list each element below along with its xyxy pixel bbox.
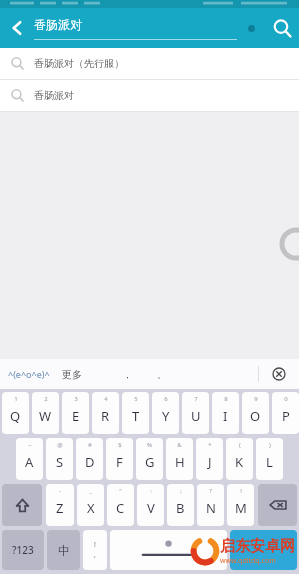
button[interactable]: 0 <box>272 392 299 434</box>
button[interactable]: Back <box>0 8 34 48</box>
staticText: ， <box>123 369 132 380</box>
staticText: C <box>116 499 125 517</box>
staticText: 3 <box>74 395 78 403</box>
button[interactable]: _ <box>77 484 104 526</box>
button[interactable]: Space <box>110 530 227 570</box>
button[interactable]: 1 <box>2 392 29 434</box>
staticText: , <box>94 550 96 560</box>
button[interactable]: 7 <box>182 392 209 434</box>
staticText: P <box>282 407 290 425</box>
button[interactable]: 2 <box>32 392 59 434</box>
button[interactable]: Enter <box>230 530 297 570</box>
staticText: 4 <box>104 395 108 403</box>
button[interactable]: # <box>76 438 103 480</box>
staticText: 香肠派对 <box>34 89 74 102</box>
button[interactable]: 中 <box>47 530 80 570</box>
button[interactable]: ! <box>227 484 254 526</box>
staticText: M <box>235 499 247 517</box>
staticText: E <box>72 407 80 425</box>
staticText: A <box>25 453 34 471</box>
staticText: X <box>87 499 95 517</box>
button[interactable]: ( <box>226 438 253 480</box>
button[interactable]: 5 <box>122 392 149 434</box>
staticText: www.qdltdq.com <box>220 556 276 566</box>
staticText: V <box>147 499 155 517</box>
button[interactable]: Backspace <box>258 484 297 526</box>
button[interactable]: ， <box>110 359 144 389</box>
staticText: " <box>119 487 122 495</box>
staticText: ^(e^o^e)^ <box>8 368 50 380</box>
staticText: D <box>85 453 95 471</box>
button[interactable]: @ <box>46 438 73 480</box>
staticText: 。 <box>157 369 166 380</box>
staticText: Z <box>56 499 64 517</box>
button[interactable]: 9 <box>242 392 269 434</box>
button[interactable]: % <box>136 438 163 480</box>
staticText: @ <box>57 441 63 449</box>
staticText: & <box>177 441 182 449</box>
staticText: 2 <box>44 395 48 403</box>
staticText: 更多 <box>62 368 82 381</box>
button[interactable]: 8 <box>212 392 239 434</box>
staticText: ! <box>240 487 242 495</box>
staticText: R <box>101 407 110 425</box>
staticText: 9 <box>254 395 258 403</box>
staticText: 香肠派对 <box>34 17 82 32</box>
button[interactable]: ~ <box>16 438 43 480</box>
staticText: Y <box>162 407 170 425</box>
button[interactable]: 。 <box>144 359 178 389</box>
staticText: H <box>175 453 185 471</box>
staticText: 8 <box>224 395 228 403</box>
button[interactable]: 更多 <box>60 364 84 385</box>
button[interactable]: ) <box>256 438 283 480</box>
staticText: ? <box>209 487 212 495</box>
staticText: B <box>176 499 185 517</box>
button[interactable]: 3 <box>62 392 89 434</box>
staticText: L <box>266 453 273 471</box>
staticText: * <box>208 441 212 449</box>
button[interactable]: Shift <box>2 484 42 526</box>
button[interactable]: Hide keyboard <box>259 359 299 389</box>
staticText: T <box>132 407 140 425</box>
staticText: ; <box>180 487 182 495</box>
staticText: ) <box>269 441 271 449</box>
button[interactable]: ? <box>197 484 224 526</box>
staticText: : <box>150 487 152 495</box>
staticText: S <box>56 453 64 471</box>
button[interactable]: * <box>196 438 223 480</box>
staticText: I <box>223 407 228 425</box>
staticText: O <box>250 407 261 425</box>
button[interactable]: - <box>46 484 74 526</box>
staticText: J <box>208 453 212 471</box>
button[interactable]: Search <box>265 8 299 48</box>
staticText: $ <box>118 441 122 449</box>
staticText: ( <box>239 441 241 449</box>
staticText: % <box>147 441 152 449</box>
button[interactable]: : <box>137 484 164 526</box>
staticText: 香肠派对（先行服） <box>34 57 124 70</box>
staticText: 1 <box>14 395 18 403</box>
staticText: 6 <box>164 395 168 403</box>
button[interactable]: ! <box>83 530 107 570</box>
staticText: # <box>88 441 92 449</box>
button[interactable]: ; <box>167 484 194 526</box>
staticText: K <box>235 453 244 471</box>
staticText: 启东安卓网 <box>220 537 295 556</box>
staticText: 0 <box>284 395 288 403</box>
button[interactable]: ^(e^o^e)^ <box>6 364 52 384</box>
button[interactable]: & <box>166 438 193 480</box>
button[interactable]: 6 <box>152 392 179 434</box>
staticText: 7 <box>194 395 198 403</box>
button[interactable]: Clear <box>237 8 265 48</box>
button[interactable]: 4 <box>92 392 119 434</box>
staticText: Q <box>10 407 21 425</box>
staticText: ~ <box>28 441 32 449</box>
button[interactable]: ?123 <box>2 530 44 570</box>
button[interactable]: $ <box>106 438 133 480</box>
staticText: G <box>145 453 155 471</box>
staticText: N <box>206 499 216 517</box>
button[interactable]: 香肠派对（先行服） <box>0 48 299 79</box>
button[interactable]: 香肠派对 <box>0 80 299 111</box>
staticText: - <box>59 487 61 495</box>
button[interactable]: " <box>107 484 134 526</box>
